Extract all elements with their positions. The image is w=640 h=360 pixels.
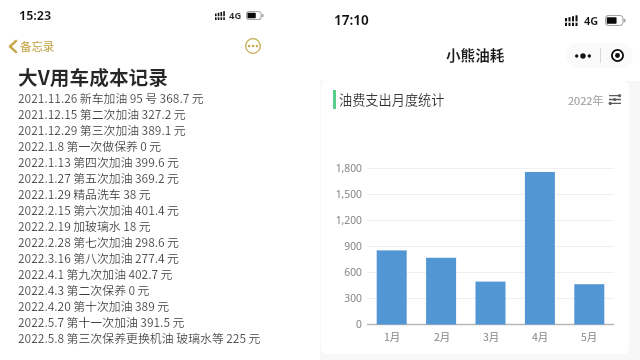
staticText: 17:10 [334,11,369,29]
staticText: 2022.1.8 第一次做保养 0 元 [18,137,162,153]
staticText: 2021.12.15 第二次加油 327.2 元 [18,105,186,121]
staticText: 1,800 [321,161,362,175]
staticText: 15:23 [19,7,52,24]
button[interactable]: 2022.1.29 精品洗车 38 元 [0,185,283,201]
staticText: 2022.4.3 第二次保养 0 元 [18,281,150,297]
button[interactable]: 2021.11.26 新车加油 95 号 368.7 元 [0,89,283,105]
staticText: 600 [321,265,362,279]
button[interactable]: 2022.2.19 加玻璃水 18 元 [0,217,283,233]
staticText: 4月 [532,329,549,344]
staticText: 小熊油耗 [446,44,505,65]
button[interactable]: 2022.4.1 第九次加油 402.7 元 [0,265,283,281]
button[interactable]: 2022.5.7 第十一次加油 391.5 元 [0,313,283,329]
button[interactable]: 2022.5.8 第三次保养更换机油 玻璃水等 225 元 [0,329,283,345]
staticText: 2022.5.8 第三次保养更换机油 玻璃水等 225 元 [18,329,261,345]
staticText: 2022.2.28 第七次加油 298.6 元 [18,233,179,249]
button[interactable]: More [566,43,600,68]
staticText: 300 [321,291,362,305]
button[interactable]: Record [601,43,633,68]
staticText: 1月 [384,329,401,344]
staticText: 2022.4.20 第十次加油 389 元 [18,297,170,313]
staticText: 2022.4.1 第九次加油 402.7 元 [18,265,173,281]
staticText: 2022.1.13 第四次加油 399.6 元 [18,153,179,169]
button[interactable]: 2022.1.13 第四次加油 399.6 元 [0,153,283,169]
staticText: 2022.1.27 第五次加油 369.2 元 [18,169,179,185]
button[interactable]: 2022.4.20 第十次加油 389 元 [0,297,283,313]
button[interactable]: 2022.2.28 第七次加油 298.6 元 [0,233,283,249]
staticText: 2022.5.7 第十一次加油 391.5 元 [18,313,185,329]
button[interactable]: 2021.12.29 第三次加油 389.1 元 [0,121,283,137]
staticText: 0 [321,317,362,331]
staticText: 2022.2.19 加玻璃水 18 元 [18,217,151,233]
button[interactable]: 2022.1.8 第一次做保养 0 元 [0,137,283,153]
staticText: 2022.2.15 第六次加油 401.4 元 [18,201,179,217]
staticText: 备忘录 [20,38,55,55]
staticText: 大V用车成本记录 [18,62,168,89]
button[interactable]: 2021.12.15 第二次加油 327.2 元 [0,105,283,121]
staticText: 1,200 [321,213,362,227]
staticText: 4G [584,13,599,28]
staticText: 2022.1.29 精品洗车 38 元 [18,185,151,201]
staticText: 1,500 [321,187,362,201]
button[interactable]: 2022.1.27 第五次加油 369.2 元 [0,169,283,185]
staticText: 4G [229,9,242,22]
staticText: 3月 [483,329,500,344]
button[interactable]: 备忘录 [7,35,57,58]
button[interactable]: 2022.3.16 第八次加油 277.4 元 [0,249,283,265]
staticText: 2021.11.26 新车加油 95 号 368.7 元 [18,89,204,105]
button[interactable]: 2022.4.3 第二次保养 0 元 [0,281,283,297]
staticText: 900 [321,239,362,253]
button[interactable]: 2022.2.15 第六次加油 401.4 元 [0,201,283,217]
button[interactable]: Filter [609,94,621,105]
staticText: 油费支出月度统计 [339,90,445,109]
staticText: 5月 [581,329,598,344]
staticText: 2021.12.29 第三次加油 389.1 元 [18,121,186,137]
staticText: 2月 [434,329,451,344]
staticText: 2022年 [568,92,604,108]
staticText: 2022.3.16 第八次加油 277.4 元 [18,249,179,265]
button[interactable]: More options [245,38,261,54]
